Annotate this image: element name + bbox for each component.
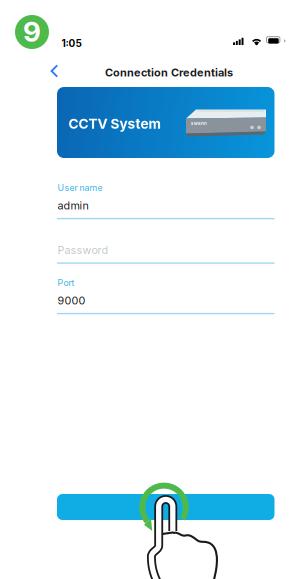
button[interactable]: Back bbox=[41, 58, 67, 84]
staticText: User name bbox=[57, 182, 102, 193]
staticText: 9 bbox=[23, 15, 41, 48]
staticText: Connection Credentials bbox=[105, 66, 233, 79]
staticText: swann bbox=[191, 120, 207, 126]
staticText: Port bbox=[57, 277, 74, 288]
staticText: 1:05 bbox=[61, 37, 81, 49]
staticText: admin bbox=[57, 199, 88, 212]
staticText: 9000 bbox=[57, 294, 85, 307]
staticText: Password bbox=[57, 244, 108, 257]
button[interactable]: Save bbox=[57, 494, 274, 520]
staticText: CCTV System bbox=[68, 115, 160, 132]
